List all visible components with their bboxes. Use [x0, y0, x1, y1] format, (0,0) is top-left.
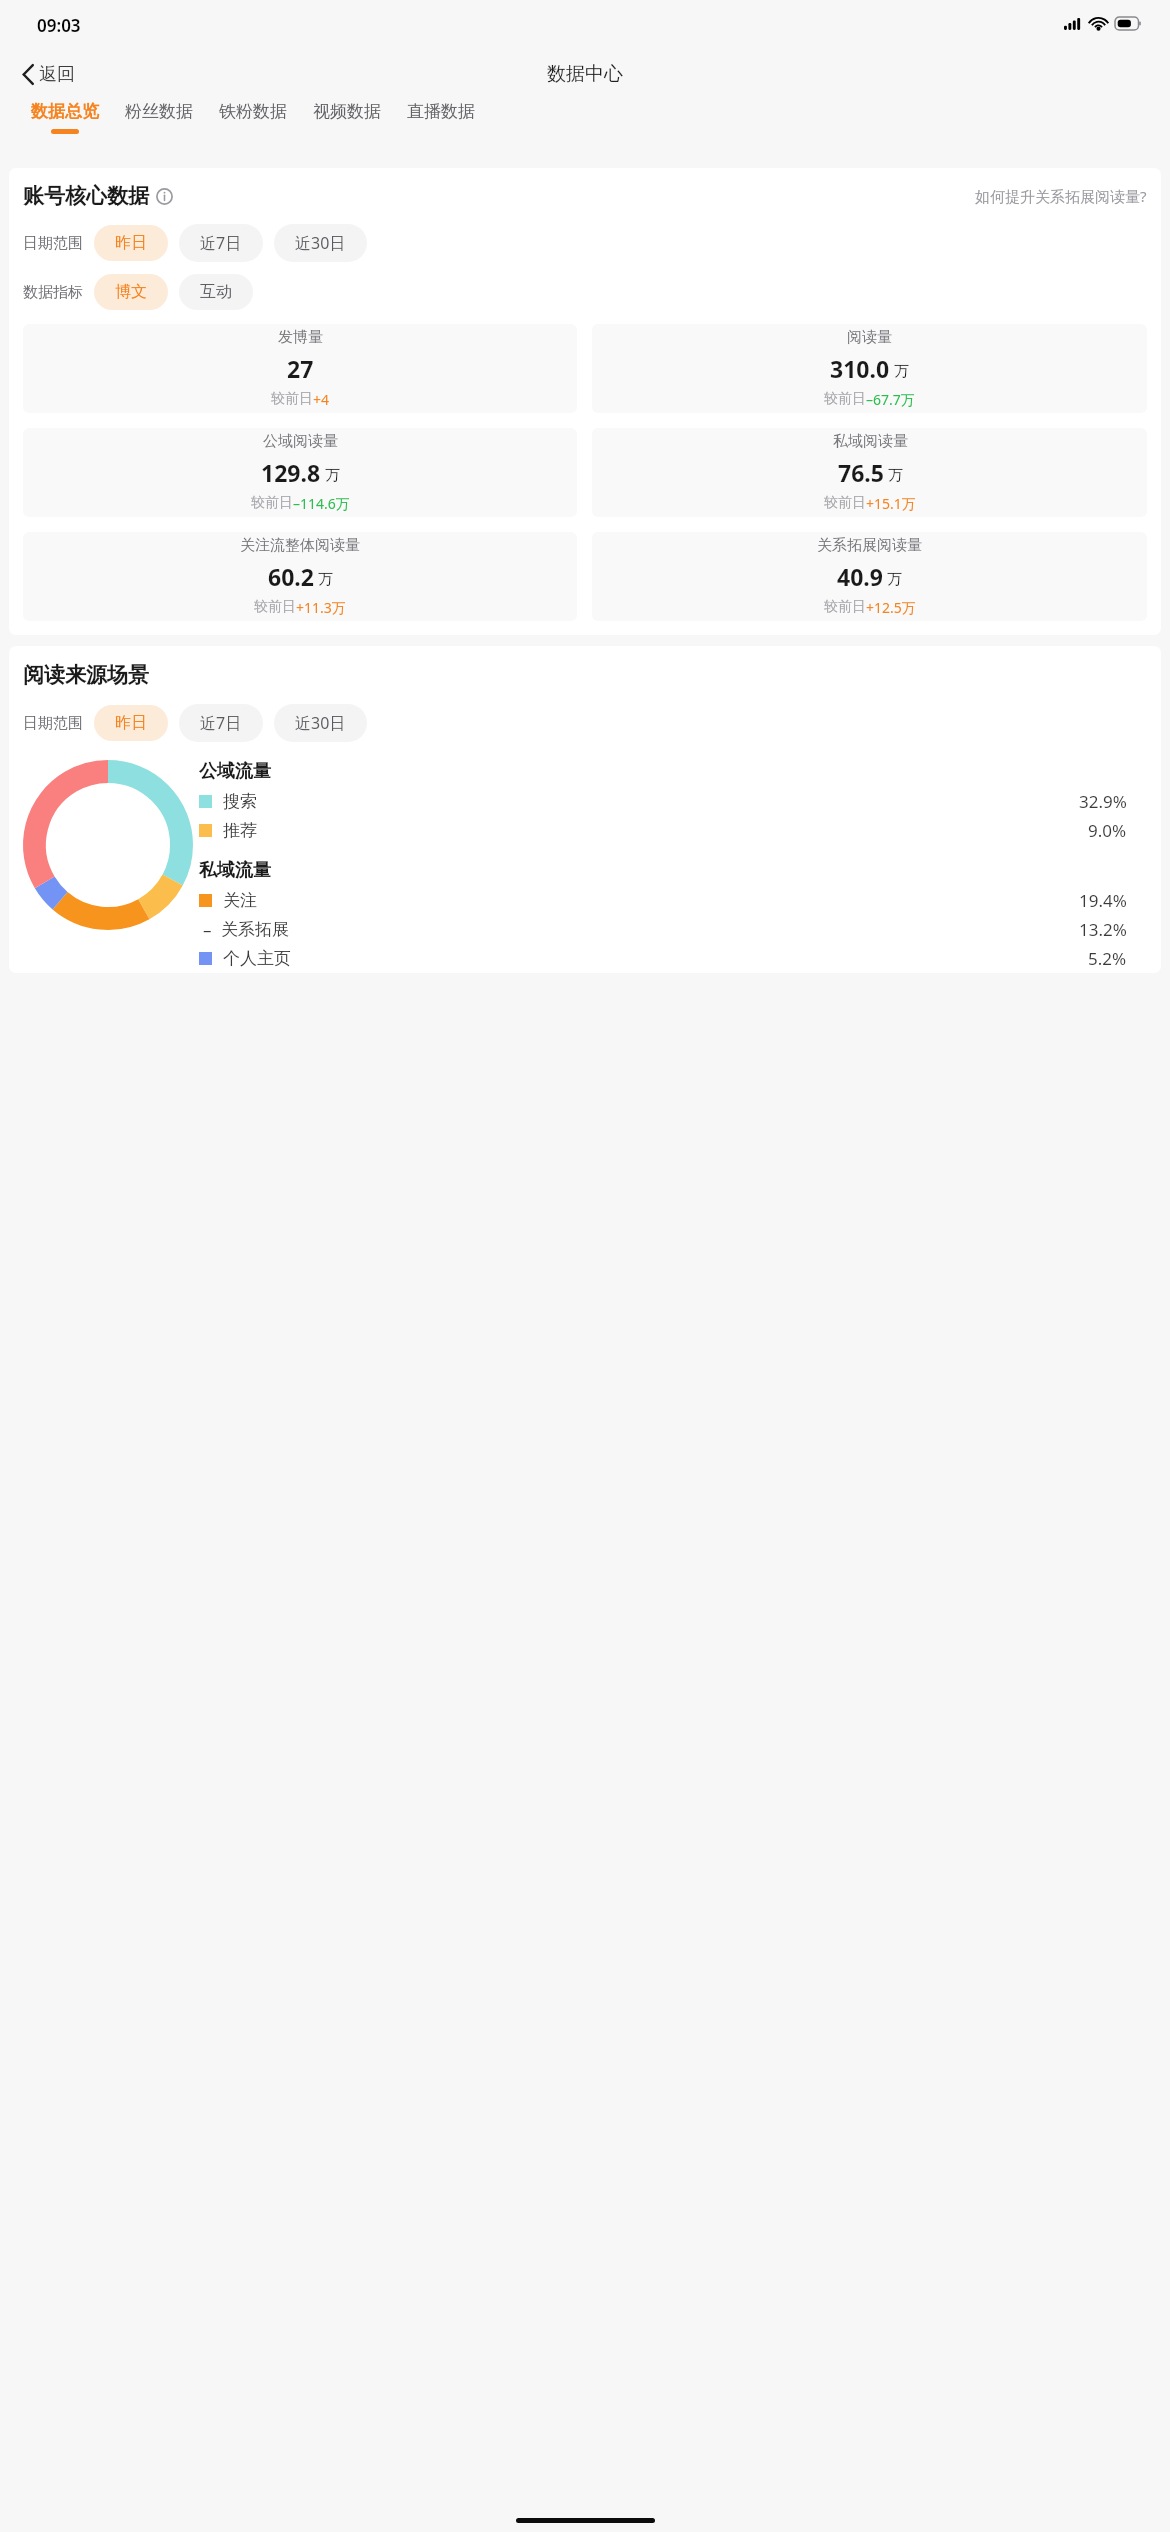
staticText: 近7日 — [200, 712, 242, 734]
staticText: 9.0% — [1088, 819, 1127, 842]
staticText: +12.5万 — [866, 598, 916, 617]
staticText: 铁粉数据 — [219, 101, 287, 122]
staticText: 万 — [325, 466, 340, 485]
staticText: 较前日 — [254, 598, 296, 616]
button[interactable]: 关系拓展阅读量 — [592, 532, 1147, 621]
staticText: 阅读来源场景 — [23, 662, 149, 688]
staticText: 博文 — [115, 282, 147, 302]
button[interactable]: 近30日 — [274, 224, 367, 262]
staticText: 返回 — [39, 63, 75, 86]
button[interactable]: 数据总览 — [18, 101, 112, 134]
staticText: 5.2% — [1088, 947, 1127, 970]
staticText: 较前日 — [824, 598, 866, 616]
staticText: 关注 — [223, 890, 257, 911]
button[interactable]: 发博量 — [23, 324, 577, 413]
staticText: +15.1万 — [866, 494, 916, 513]
button[interactable]: 近30日 — [274, 704, 367, 742]
button[interactable]: 关注流整体阅读量 — [23, 532, 577, 621]
staticText: 昨日 — [115, 713, 147, 733]
staticText: 310.0 — [830, 353, 890, 384]
staticText: 60.2 — [268, 561, 314, 592]
staticText: 直播数据 — [407, 101, 475, 122]
staticText: 32.9% — [1079, 790, 1127, 813]
staticText: 较前日 — [824, 390, 866, 408]
staticText: 账号核心数据 — [23, 183, 149, 209]
staticText: 粉丝数据 — [125, 101, 193, 122]
staticText: 关系拓展阅读量 — [817, 536, 922, 555]
button[interactable]: 昨日 — [94, 705, 168, 741]
staticText: 关系拓展 — [221, 919, 289, 940]
staticText: – — [203, 918, 212, 941]
staticText: 个人主页 — [223, 948, 291, 969]
button[interactable]: 近7日 — [179, 224, 263, 262]
staticText: 40.9 — [837, 561, 883, 592]
button[interactable]: 搜索 — [199, 787, 1147, 816]
staticText: –114.6万 — [293, 494, 350, 513]
staticText: 公域流量 — [199, 760, 271, 783]
button[interactable]: 互动 — [179, 274, 253, 310]
staticText: 万 — [887, 570, 902, 589]
button[interactable]: 博文 — [94, 274, 168, 310]
staticText: 数据指标 — [23, 283, 83, 302]
button[interactable]: 返回 — [0, 55, 89, 94]
button[interactable]: 昨日 — [94, 225, 168, 261]
staticText: 私域流量 — [199, 859, 271, 882]
button[interactable]: 推荐 — [199, 816, 1147, 845]
staticText: 19.4% — [1079, 889, 1127, 912]
staticText: –67.7万 — [866, 390, 915, 409]
button[interactable]: 说明 — [156, 188, 173, 205]
staticText: 互动 — [200, 282, 232, 302]
staticText: 129.8 — [261, 457, 321, 488]
staticText: 近7日 — [200, 232, 242, 254]
staticText: 发博量 — [278, 328, 323, 347]
button[interactable]: 粉丝数据 — [112, 101, 206, 122]
button[interactable]: 如何提升关系拓展阅读量? — [975, 186, 1147, 206]
staticText: +4 — [313, 390, 330, 409]
staticText: 日期范围 — [23, 714, 83, 733]
button[interactable]: 私域阅读量 — [592, 428, 1147, 517]
button[interactable]: 近7日 — [179, 704, 263, 742]
staticText: 13.2% — [1079, 918, 1127, 941]
staticText: 搜索 — [223, 791, 257, 812]
staticText: 27 — [287, 353, 314, 384]
staticText: 较前日 — [251, 494, 293, 512]
staticText: 日期范围 — [23, 234, 83, 253]
staticText: 关注流整体阅读量 — [240, 536, 360, 555]
button[interactable]: 阅读量 — [592, 324, 1147, 413]
button[interactable]: 视频数据 — [300, 101, 394, 122]
staticText: 数据总览 — [31, 101, 99, 122]
staticText: 昨日 — [115, 233, 147, 253]
staticText: 万 — [888, 466, 903, 485]
button[interactable]: – — [199, 915, 1147, 944]
staticText: 近30日 — [295, 232, 346, 254]
staticText: 近30日 — [295, 712, 346, 734]
button[interactable]: 铁粉数据 — [206, 101, 300, 122]
staticText: 万 — [318, 570, 333, 589]
button[interactable]: 直播数据 — [394, 101, 488, 122]
button[interactable]: 公域阅读量 — [23, 428, 577, 517]
staticText: 数据中心 — [547, 62, 623, 86]
staticText: 较前日 — [824, 494, 866, 512]
staticText: 私域阅读量 — [833, 432, 908, 451]
button[interactable]: 关注 — [199, 886, 1147, 915]
staticText: 76.5 — [838, 457, 884, 488]
staticText: 公域阅读量 — [263, 432, 338, 451]
staticText: 阅读量 — [847, 328, 892, 347]
button[interactable]: 个人主页 — [199, 944, 1147, 973]
staticText: 较前日 — [271, 390, 313, 408]
staticText: 视频数据 — [313, 101, 381, 122]
staticText: 09:03 — [37, 14, 81, 37]
staticText: 推荐 — [223, 820, 257, 841]
staticText: +11.3万 — [296, 598, 346, 617]
staticText: 万 — [894, 362, 909, 381]
